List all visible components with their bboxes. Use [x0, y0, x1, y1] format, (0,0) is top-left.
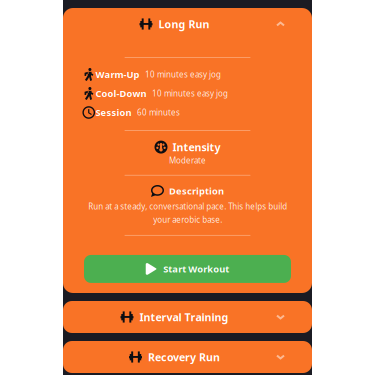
staticText: Moderate — [169, 155, 206, 166]
staticText: Start Workout — [163, 263, 229, 275]
staticText: Session — [95, 106, 131, 119]
staticText: Warm-Up — [95, 68, 139, 81]
staticText: Recovery Run — [148, 350, 220, 364]
staticText: Description — [169, 185, 224, 197]
staticText: Long Run — [158, 17, 209, 31]
button[interactable]: Start Workout — [84, 255, 291, 283]
button[interactable]: Recovery Run — [63, 341, 312, 373]
staticText: 10 minutes easy jog — [145, 69, 221, 80]
staticText: Intensity — [172, 140, 220, 154]
staticText: 60 minutes — [137, 107, 180, 118]
staticText: Run at a steady, conversational pace. Th… — [88, 201, 287, 225]
staticText: 10 minutes easy jog — [152, 88, 228, 99]
button[interactable]: Interval Training — [63, 301, 312, 333]
staticText: Cool-Down — [95, 87, 146, 100]
button[interactable]: Long Run — [63, 8, 312, 40]
staticText: Interval Training — [139, 310, 228, 324]
